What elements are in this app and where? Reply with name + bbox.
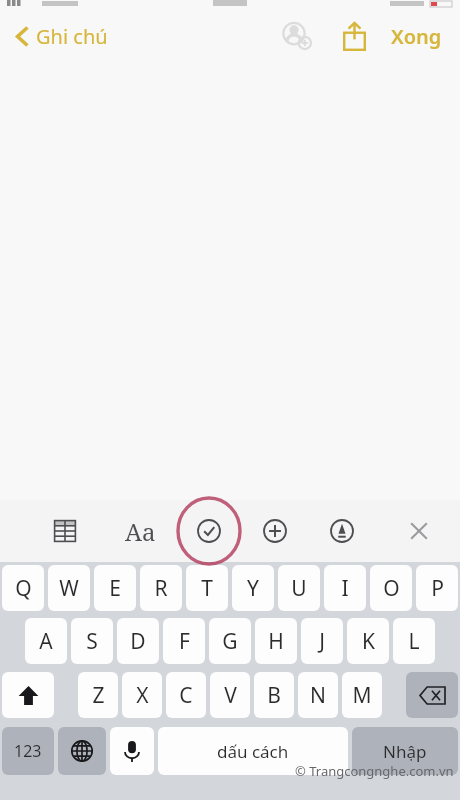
staticText: L xyxy=(408,627,420,656)
staticText: Nhập xyxy=(383,740,427,763)
button[interactable]: P xyxy=(416,565,458,611)
button[interactable]: Q xyxy=(2,565,44,611)
button[interactable]: dấu cách xyxy=(158,727,348,775)
staticText: H xyxy=(268,627,284,656)
staticText: A xyxy=(39,627,53,656)
button[interactable]: Shift xyxy=(2,672,54,718)
staticText: U xyxy=(291,574,307,603)
staticText: Xong xyxy=(391,23,442,50)
button[interactable]: C xyxy=(166,672,206,718)
button[interactable]: L xyxy=(393,618,435,664)
staticText: dấu cách xyxy=(217,740,289,763)
button[interactable]: K xyxy=(347,618,389,664)
button[interactable]: S xyxy=(71,618,113,664)
staticText: I xyxy=(341,574,349,603)
button[interactable]: X xyxy=(122,672,162,718)
staticText: Q xyxy=(15,574,32,603)
staticText: 123 xyxy=(14,740,42,762)
button[interactable]: Add attachment xyxy=(253,509,297,553)
button[interactable]: Z xyxy=(78,672,118,718)
button[interactable]: A xyxy=(25,618,67,664)
staticText: R xyxy=(154,574,168,603)
staticText: T xyxy=(201,574,213,603)
button[interactable]: T xyxy=(186,565,228,611)
button[interactable]: R xyxy=(140,565,182,611)
staticText: V xyxy=(224,681,237,710)
staticText: O xyxy=(383,574,400,603)
staticText: B xyxy=(267,681,281,710)
staticText: J xyxy=(319,627,325,656)
button[interactable]: Nhập xyxy=(352,727,458,775)
button[interactable]: J xyxy=(301,618,343,664)
button[interactable]: Close keyboard xyxy=(397,509,441,553)
staticText: D xyxy=(130,627,146,656)
button[interactable]: H xyxy=(255,618,297,664)
button[interactable]: Backspace xyxy=(406,672,458,718)
button[interactable]: Markup xyxy=(320,509,364,553)
button[interactable]: Xong xyxy=(383,17,450,56)
button[interactable]: V xyxy=(210,672,250,718)
staticText: N xyxy=(310,681,326,710)
button[interactable]: Checklist xyxy=(187,509,231,553)
staticText: Aa xyxy=(125,515,156,548)
button[interactable]: B xyxy=(254,672,294,718)
staticText: X xyxy=(136,681,149,710)
staticText: C xyxy=(179,681,193,710)
button[interactable]: Share xyxy=(333,15,375,57)
button[interactable]: Add people xyxy=(275,14,319,58)
staticText: G xyxy=(222,627,238,656)
button[interactable]: U xyxy=(278,565,320,611)
staticText: Ghi chú xyxy=(36,23,108,50)
button[interactable]: Ghi chú xyxy=(12,18,112,55)
staticText: P xyxy=(431,574,444,603)
button[interactable]: 123 xyxy=(2,727,54,775)
staticText: W xyxy=(59,574,79,603)
button[interactable]: Y xyxy=(232,565,274,611)
button[interactable]: E xyxy=(94,565,136,611)
button[interactable]: O xyxy=(370,565,412,611)
button[interactable]: N xyxy=(298,672,338,718)
button[interactable]: Insert table xyxy=(43,509,87,553)
staticText: K xyxy=(362,627,375,656)
button[interactable]: D xyxy=(117,618,159,664)
staticText: F xyxy=(179,627,190,656)
staticText: Z xyxy=(92,681,105,710)
button[interactable]: M xyxy=(342,672,382,718)
staticText: S xyxy=(86,627,98,656)
staticText: E xyxy=(109,574,121,603)
staticText: © Trangcongnghe.com.vn xyxy=(295,762,454,780)
button[interactable]: Voice input xyxy=(110,727,154,775)
button[interactable]: F xyxy=(163,618,205,664)
button[interactable]: Switch keyboard language xyxy=(58,727,106,775)
button[interactable]: W xyxy=(48,565,90,611)
button[interactable]: Aa xyxy=(118,509,162,553)
staticText: Y xyxy=(247,574,259,603)
button[interactable]: I xyxy=(324,565,366,611)
button[interactable]: G xyxy=(209,618,251,664)
staticText: M xyxy=(352,681,372,710)
